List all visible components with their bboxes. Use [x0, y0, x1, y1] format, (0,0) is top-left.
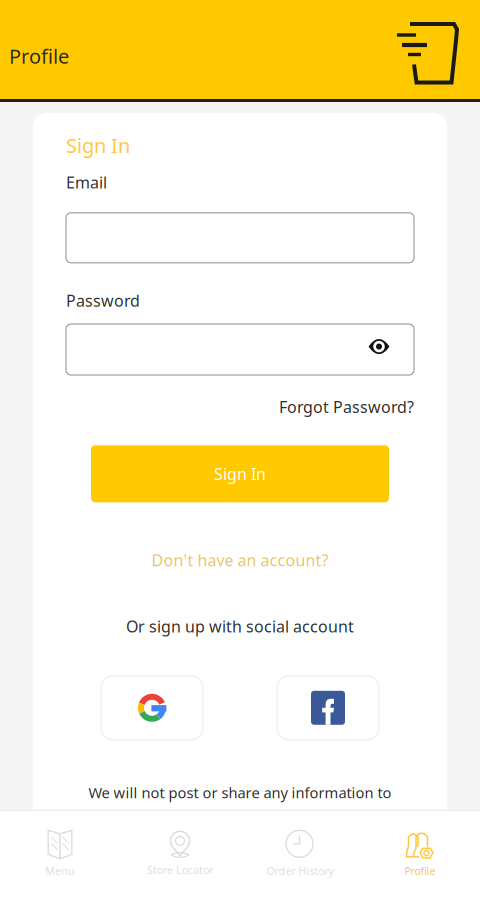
button[interactable]: Show password	[368, 339, 414, 361]
staticText: Don't have an account?	[151, 549, 328, 570]
button[interactable]: Sign up with Facebook	[277, 676, 379, 740]
staticText: Forgot Password?	[279, 396, 414, 417]
staticText: your account without your permission.	[107, 809, 373, 829]
staticText: Order History	[266, 864, 333, 878]
staticText: Profile	[9, 43, 69, 69]
button[interactable]: Order History	[240, 810, 360, 900]
button[interactable]: Sign up with Google	[101, 676, 203, 740]
button[interactable]: Sign In	[91, 445, 389, 502]
button[interactable]: Brand logo	[394, 12, 458, 84]
button[interactable]: Menu	[0, 810, 120, 900]
button[interactable]: Profile	[360, 810, 480, 900]
staticText: Or sign up with social account	[126, 616, 354, 637]
staticText: Sign In	[66, 132, 130, 159]
staticText: Email	[66, 172, 107, 193]
staticText: Profile	[404, 864, 435, 878]
button[interactable]: Forgot Password?	[279, 396, 414, 417]
staticText: Password	[66, 290, 140, 311]
button[interactable]: Store Locator	[120, 811, 240, 899]
staticText: We will not post or share any informatio…	[88, 783, 391, 802]
button[interactable]: Don't have an account?	[66, 549, 414, 570]
staticText: Menu	[45, 864, 75, 878]
staticText: Sign In	[214, 463, 266, 484]
staticText: Store Locator	[147, 863, 213, 877]
